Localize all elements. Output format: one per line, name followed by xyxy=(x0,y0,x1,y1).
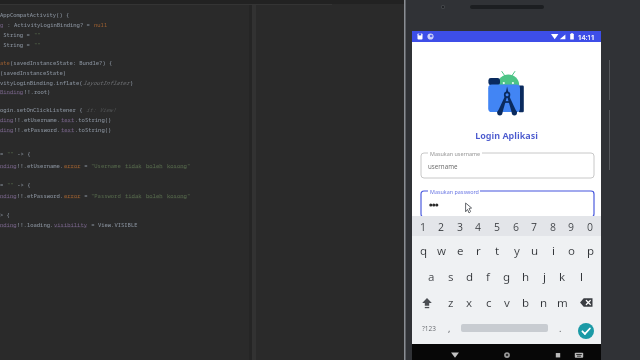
button[interactable]: Home xyxy=(501,348,513,360)
button[interactable]: ?123 xyxy=(416,318,442,338)
button[interactable]: 9 xyxy=(562,216,581,238)
staticText: (savedInstanceState) xyxy=(0,69,67,76)
button[interactable]: 3 xyxy=(451,216,470,238)
staticText: !!.loading. xyxy=(17,221,54,228)
button[interactable]: s xyxy=(441,266,460,288)
button[interactable]: 5 xyxy=(488,216,507,238)
staticText: AppCompatActivity() { xyxy=(0,11,70,18)
staticText: 7 xyxy=(531,220,538,234)
button[interactable]: l xyxy=(572,266,591,288)
staticText: m xyxy=(557,295,568,311)
staticText: 14:11 xyxy=(578,33,595,42)
button[interactable]: e xyxy=(451,240,470,262)
button[interactable]: Masukan password xyxy=(421,191,594,217)
button[interactable]: , xyxy=(442,318,456,338)
button[interactable]: x xyxy=(460,292,479,314)
staticText: g xyxy=(0,21,4,28)
button[interactable]: f xyxy=(478,266,497,288)
staticText: .toString() xyxy=(75,126,112,133)
staticText: tidak xyxy=(125,162,142,169)
button[interactable]: k xyxy=(553,266,572,288)
button[interactable]: n xyxy=(534,292,553,314)
staticText: layoutInflater xyxy=(83,79,130,86)
button[interactable]: Recents xyxy=(552,348,564,360)
staticText: r xyxy=(476,243,481,259)
button[interactable]: a xyxy=(422,266,441,288)
staticText: p xyxy=(587,243,595,259)
staticText: String = xyxy=(0,41,34,48)
button[interactable]: p xyxy=(581,240,600,262)
staticText: null xyxy=(94,21,108,28)
button[interactable]: b xyxy=(516,292,535,314)
staticText: g xyxy=(503,269,511,285)
staticText: 5 xyxy=(494,220,501,234)
button[interactable]: 7 xyxy=(525,216,544,238)
staticText: b xyxy=(522,295,530,311)
button[interactable]: Enter xyxy=(578,323,594,339)
button[interactable]: q xyxy=(414,240,433,262)
staticText: "" xyxy=(7,150,14,157)
staticText: h xyxy=(522,269,530,285)
staticText: Masukan username xyxy=(430,150,481,157)
staticText: d xyxy=(466,269,474,285)
button[interactable]: 0 xyxy=(581,216,600,238)
staticText: kosong xyxy=(167,162,187,169)
staticText: !!.etUsername. xyxy=(14,116,61,123)
button[interactable]: y xyxy=(507,240,526,262)
staticText: boleh xyxy=(146,162,163,169)
button[interactable]: . xyxy=(553,318,567,338)
button[interactable]: z xyxy=(441,292,460,314)
button[interactable]: u xyxy=(525,240,544,262)
button[interactable]: d xyxy=(460,266,479,288)
staticText: = xyxy=(81,192,91,199)
staticText: visibility xyxy=(54,221,88,228)
button[interactable]: 4 xyxy=(469,216,488,238)
staticText: u xyxy=(531,243,539,259)
button[interactable]: c xyxy=(479,292,498,314)
button[interactable]: g xyxy=(497,266,516,288)
staticText: "Username xyxy=(91,162,125,169)
button[interactable]: m xyxy=(553,292,572,314)
button[interactable]: 6 xyxy=(507,216,526,238)
button[interactable]: Shift xyxy=(417,292,437,313)
button[interactable]: Back xyxy=(449,348,461,360)
button[interactable]: t xyxy=(488,240,507,262)
staticText: x xyxy=(466,295,473,311)
staticText: ogin.setOnClickListener { xyxy=(0,106,86,113)
staticText: Login Aplikasi xyxy=(412,129,601,141)
button[interactable]: Backspace xyxy=(576,292,597,313)
staticText: !!.etUsername. xyxy=(17,162,64,169)
staticText: (savedInstanceState: Bundle?) { xyxy=(10,59,113,66)
staticText: > { xyxy=(0,211,10,218)
staticText: !!.etPassword. xyxy=(14,126,61,133)
staticText: ding xyxy=(0,126,14,133)
button[interactable]: Keyboard xyxy=(573,348,585,360)
button[interactable]: j xyxy=(535,266,554,288)
staticText: a xyxy=(428,269,435,285)
staticText: tidak xyxy=(125,192,142,199)
staticText: "" xyxy=(34,41,41,48)
button[interactable]: o xyxy=(562,240,581,262)
button[interactable]: v xyxy=(497,292,516,314)
staticText: !!.root) xyxy=(24,88,51,95)
staticText: v xyxy=(504,295,510,311)
staticText: . xyxy=(559,322,562,334)
staticText: s xyxy=(448,269,454,285)
staticText: 0 xyxy=(587,220,594,234)
button[interactable]: r xyxy=(469,240,488,262)
button[interactable]: 8 xyxy=(544,216,563,238)
button[interactable]: i xyxy=(544,240,563,262)
button[interactable]: h xyxy=(516,266,535,288)
staticText: z xyxy=(448,295,454,311)
staticText: , xyxy=(448,322,451,334)
staticText: error xyxy=(64,162,81,169)
button[interactable]: 1 xyxy=(414,216,433,238)
button[interactable]: 2 xyxy=(432,216,451,238)
button[interactable]: Masukan username xyxy=(421,153,594,178)
staticText: f xyxy=(486,269,490,285)
button[interactable]: w xyxy=(432,240,451,262)
